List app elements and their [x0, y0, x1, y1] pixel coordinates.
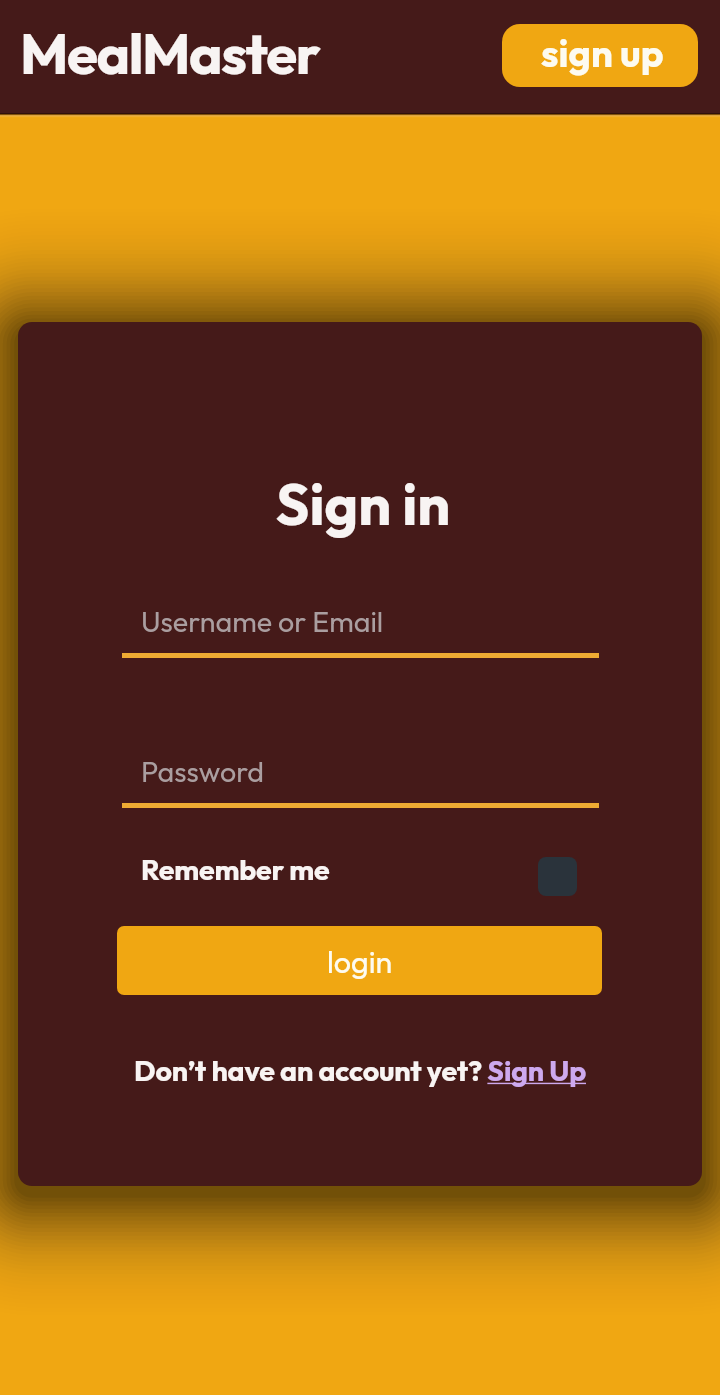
staticText: Sign in [21, 467, 702, 540]
staticText: MealMaster [20, 17, 320, 88]
staticText: Remember me [141, 851, 330, 887]
button[interactable]: Remember me [122, 838, 599, 908]
staticText: login [327, 942, 393, 980]
button[interactable]: Username or Email [122, 590, 599, 658]
staticText: Username or Email [141, 603, 384, 639]
button[interactable]: Password [122, 740, 599, 808]
button[interactable]: sign up [502, 24, 698, 87]
button[interactable]: login [117, 926, 602, 995]
other: Remember me checkbox [538, 857, 577, 896]
button[interactable]: Don’t have an account yet? Sign Up [18, 1052, 702, 1088]
staticText: sign up [541, 29, 664, 77]
staticText: Password [141, 753, 264, 789]
